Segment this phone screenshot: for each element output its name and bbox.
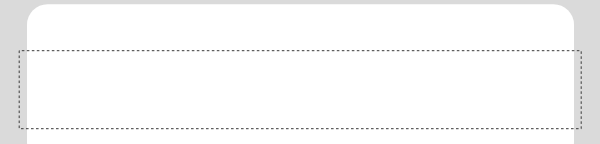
button[interactable]: Content placeholder (19, 50, 581, 128)
